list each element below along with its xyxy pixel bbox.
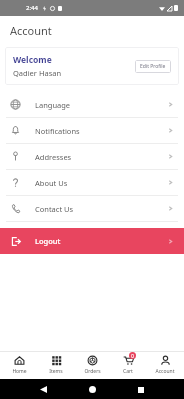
button[interactable]: Orders <box>75 355 109 375</box>
button[interactable]: Welcome <box>5 47 179 85</box>
button[interactable]: Addresses <box>0 144 184 169</box>
staticText: Account <box>10 23 52 38</box>
staticText: Logout <box>35 236 61 246</box>
button[interactable]: Edit Profile <box>135 60 171 73</box>
staticText: Contact Us <box>35 204 74 214</box>
staticText: Home <box>12 368 27 375</box>
staticText: About Us <box>35 178 68 188</box>
staticText: Language <box>35 100 71 110</box>
button[interactable]: Account <box>148 355 182 375</box>
staticText: Qadier Hasan <box>13 68 62 78</box>
button[interactable]: Home <box>88 385 97 394</box>
staticText: Welcome <box>13 54 52 66</box>
button[interactable]: Language <box>0 92 184 117</box>
staticText: Items <box>49 368 63 375</box>
button[interactable]: Notifications <box>0 118 184 143</box>
staticText: 0 <box>131 353 134 359</box>
staticText: 2:44 <box>26 4 38 12</box>
staticText: Cart <box>123 368 133 375</box>
button[interactable]: About Us <box>0 170 184 195</box>
staticText: Account <box>155 368 175 375</box>
button[interactable]: Recents <box>136 385 145 394</box>
staticText: Addresses <box>35 152 72 162</box>
button[interactable]: Home <box>2 355 36 375</box>
button[interactable]: 0 <box>111 355 145 375</box>
staticText: Notifications <box>35 126 80 136</box>
button[interactable]: Back <box>39 385 48 394</box>
button[interactable]: Items <box>39 355 73 375</box>
staticText: Edit Profile <box>140 63 166 70</box>
button[interactable]: Contact Us <box>0 196 184 221</box>
staticText: Orders <box>84 368 101 375</box>
button[interactable]: Logout <box>0 228 184 254</box>
